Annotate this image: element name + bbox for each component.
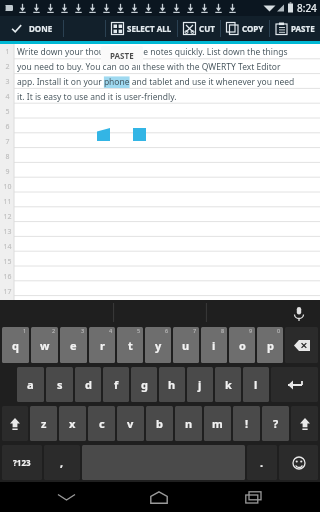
button[interactable]: h (159, 367, 185, 402)
button[interactable]: i (201, 327, 227, 363)
staticText: h (168, 377, 176, 392)
button[interactable]: t (117, 327, 143, 363)
button[interactable]: k (215, 367, 241, 402)
staticText: v (127, 416, 134, 431)
staticText: k (225, 377, 232, 392)
staticText: y (155, 338, 162, 353)
button[interactable]: Selection end handle (133, 128, 146, 144)
button[interactable]: Backspace (285, 327, 318, 363)
staticText: l (254, 377, 258, 392)
staticText: ?123 (13, 457, 31, 468)
button[interactable]: a (17, 367, 44, 402)
staticText: d (85, 377, 92, 392)
button[interactable]: z (30, 406, 57, 441)
staticText: j (198, 377, 202, 392)
button[interactable]: 1 (0, 44, 320, 300)
button[interactable]: w (31, 327, 58, 363)
staticText: u (182, 338, 190, 353)
button[interactable]: SELECT ALL (106, 16, 177, 41)
button[interactable]: o (229, 327, 255, 363)
staticText: z (41, 416, 47, 431)
button[interactable]: d (75, 367, 101, 402)
button[interactable]: ! (233, 406, 260, 441)
staticText: 6 (165, 327, 169, 334)
button[interactable]: Recent apps (226, 482, 280, 512)
button[interactable]: n (175, 406, 202, 441)
button[interactable]: g (131, 367, 157, 402)
button[interactable]: , (44, 445, 80, 480)
button[interactable]: p (257, 327, 283, 363)
staticText: 1 (5, 47, 10, 57)
button[interactable]: . (247, 445, 277, 480)
staticText: DONE (29, 23, 53, 34)
button[interactable]: DONE (0, 16, 63, 41)
staticText: PASTE (291, 23, 315, 34)
staticText: 7 (5, 137, 10, 147)
button[interactable]: c (88, 406, 115, 441)
button[interactable]: CUT (178, 16, 220, 41)
staticText: o (239, 338, 246, 353)
staticText: 0 (277, 327, 281, 334)
button[interactable]: Shift (291, 406, 318, 441)
button[interactable]: q (2, 327, 29, 363)
staticText: Write down your thoughts. Make notes qui… (17, 46, 288, 58)
button[interactable]: PASTE (270, 16, 320, 41)
button[interactable]: r (89, 327, 115, 363)
staticText: x (69, 416, 76, 431)
button[interactable]: Home (132, 482, 186, 512)
staticText: r (100, 338, 105, 353)
staticText: it. It is easy to use and it is user-fri… (17, 91, 177, 103)
button[interactable]: ?123 (2, 445, 42, 480)
staticText: 3 (5, 77, 10, 87)
button[interactable]: j (187, 367, 213, 402)
staticText: app. Install it on your phone and tablet… (17, 76, 295, 88)
staticText: 10 (3, 182, 12, 192)
button[interactable]: COPY (221, 16, 269, 41)
staticText: 11 (3, 197, 12, 207)
button[interactable]: b (146, 406, 173, 441)
staticText: p (267, 338, 274, 353)
button[interactable]: Enter (271, 367, 318, 402)
button[interactable]: x (59, 406, 86, 441)
button[interactable]: Shift (2, 406, 28, 441)
button[interactable]: e (60, 327, 87, 363)
staticText: PASTE (110, 50, 134, 61)
staticText: , (60, 455, 64, 470)
staticText: w (40, 338, 50, 353)
button[interactable]: l (243, 367, 269, 402)
staticText: 5 (5, 107, 10, 117)
button[interactable]: PASTE (101, 46, 143, 65)
button[interactable]: m (204, 406, 231, 441)
staticText: q (12, 338, 19, 353)
button[interactable]: Voice input (290, 304, 308, 322)
staticText: 2 (5, 62, 10, 72)
staticText: 2 (52, 327, 56, 334)
staticText: 8:24 (297, 1, 317, 15)
staticText: a (27, 377, 34, 392)
button[interactable]: y (145, 327, 171, 363)
button[interactable]: f (103, 367, 129, 402)
staticText: COPY (242, 23, 264, 34)
staticText: 16 (3, 272, 12, 282)
staticText: you need to buy. You can do all these wi… (17, 61, 281, 73)
staticText: 4 (5, 92, 10, 102)
button[interactable]: s (46, 367, 73, 402)
button[interactable]: Back (39, 482, 93, 512)
staticText: 6 (5, 122, 10, 132)
button[interactable]: v (117, 406, 144, 441)
button[interactable]: Emoji (279, 445, 318, 480)
button[interactable]: u (173, 327, 199, 363)
staticText: 5 (137, 327, 141, 334)
staticText: b (156, 416, 163, 431)
staticText: CUT (199, 23, 215, 34)
staticText: 15 (3, 257, 12, 267)
staticText: 8 (5, 152, 10, 162)
staticText: s (57, 377, 63, 392)
button[interactable]: Selection start handle (97, 128, 110, 144)
staticText: m (212, 416, 223, 431)
staticText: 13 (3, 227, 12, 237)
staticText: 9 (5, 167, 10, 177)
staticText: 14 (3, 242, 12, 252)
button[interactable]: ? (262, 406, 289, 441)
